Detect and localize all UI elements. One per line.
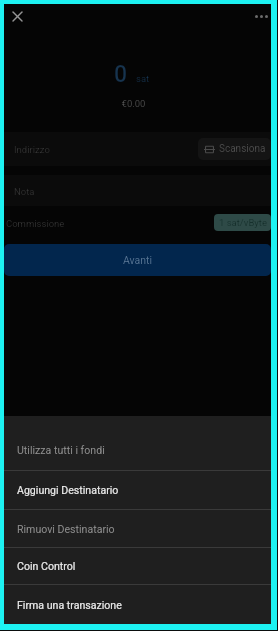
staticText: sat (136, 73, 150, 84)
staticText: Scansiona (219, 143, 266, 155)
staticText: 1 sat/vByte (219, 217, 267, 228)
staticText: Aggiungi Destinatario (17, 484, 119, 496)
staticText: Indirizzo (14, 144, 50, 155)
button[interactable]: Firma una transazione (4, 585, 271, 624)
button[interactable]: Scansiona (198, 138, 271, 160)
staticText: Firma una transazione (17, 599, 122, 611)
button[interactable]: Rimuovi Destinatario (4, 510, 271, 547)
staticText: Coin Control (17, 560, 76, 572)
button[interactable]: Close (5, 4, 29, 28)
button[interactable]: Utilizza tutti i fondi (4, 430, 271, 470)
staticText: Rimuovi Destinatario (17, 523, 115, 535)
button[interactable]: Avanti (4, 244, 271, 276)
staticText: Nota (14, 186, 35, 197)
button[interactable]: Coin Control (4, 548, 271, 584)
staticText: Utilizza tutti i fondi (17, 444, 105, 456)
staticText: 0 (114, 61, 128, 88)
staticText: €0.00 (0, 98, 267, 109)
button[interactable]: More options (249, 4, 273, 28)
button[interactable]: 1 sat/vByte (214, 214, 271, 231)
button[interactable]: Aggiungi Destinatario (4, 471, 271, 509)
staticText: Avanti (123, 254, 153, 266)
staticText: Commissione (6, 218, 65, 229)
